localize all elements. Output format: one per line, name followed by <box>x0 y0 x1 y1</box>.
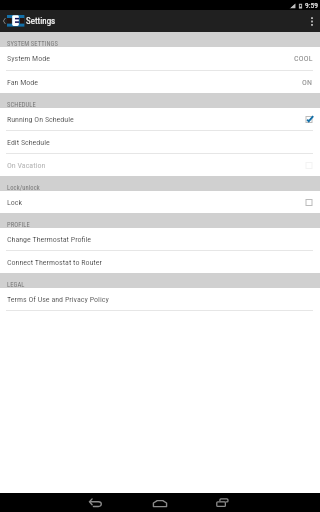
staticText: Settings <box>26 16 56 27</box>
button[interactable]: Edit Schedule <box>0 131 320 153</box>
button[interactable]: Fan Mode <box>0 71 320 93</box>
staticText: System Mode <box>7 54 50 63</box>
button[interactable]: System Mode <box>0 47 320 70</box>
button[interactable]: Terms Of Use and Privacy Policy <box>0 288 320 310</box>
button[interactable]: Connect Thermostat to Router <box>0 251 320 273</box>
button[interactable]: Lock <box>0 191 320 213</box>
staticText: Fan Mode <box>7 78 39 87</box>
button[interactable]: More options <box>304 10 320 32</box>
button[interactable]: Back <box>80 493 110 512</box>
staticText: Edit Schedule <box>7 138 50 147</box>
staticText: LEGAL <box>7 281 25 289</box>
staticText: Connect Thermostat to Router <box>7 258 102 267</box>
staticText: On Vacation <box>7 161 46 170</box>
staticText: Lock/unlock <box>7 184 40 192</box>
staticText: Lock <box>7 198 23 207</box>
staticText: Running On Schedule <box>7 115 74 124</box>
button[interactable]: Running On Schedule <box>0 108 320 130</box>
button[interactable]: Home <box>145 493 175 512</box>
button: On Vacation <box>0 154 320 176</box>
button[interactable]: Recent apps <box>207 493 237 512</box>
staticText: COOL <box>294 54 313 63</box>
staticText: 9:59 <box>305 1 318 10</box>
button[interactable]: Change Thermostat Profile <box>0 228 320 250</box>
staticText: ON <box>302 78 313 87</box>
staticText: SYSTEM SETTINGS <box>7 40 58 48</box>
button[interactable]: Navigate up <box>1 10 24 32</box>
staticText: SCHEDULE <box>7 101 36 109</box>
staticText: Terms Of Use and Privacy Policy <box>7 295 109 304</box>
staticText: Change Thermostat Profile <box>7 235 92 244</box>
staticText: PROFILE <box>7 221 30 229</box>
